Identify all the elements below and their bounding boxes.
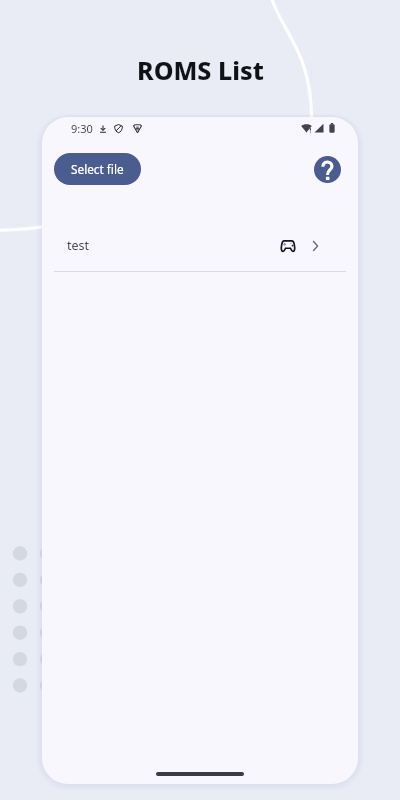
staticText: Select file <box>71 161 124 177</box>
button[interactable]: Select file <box>54 153 141 185</box>
button[interactable]: Help <box>314 156 341 183</box>
button[interactable]: test <box>42 227 358 271</box>
staticText: 9:30 <box>71 121 93 136</box>
staticText: ROMS List <box>137 53 264 87</box>
staticText: test <box>67 237 90 254</box>
